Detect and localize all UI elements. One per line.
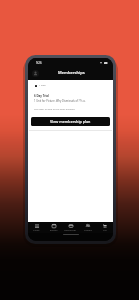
staticText: Calendar <box>84 229 92 232</box>
staticText: 1 Unit for Picture. Why Dismissals of ??… <box>34 99 86 103</box>
staticText: Classes <box>33 229 40 232</box>
staticText: Memberships <box>64 229 77 232</box>
staticText: Booking <box>50 229 58 232</box>
staticText: View membership plan <box>50 119 91 124</box>
staticText: 9:26 <box>36 61 42 65</box>
staticText: Memberships <box>58 70 85 75</box>
staticText: Cart <box>103 229 107 232</box>
button[interactable]: Calendar <box>79 222 96 233</box>
staticText: Will open on app of this after booking <box>34 108 75 111</box>
button[interactable]: Memberships <box>62 222 79 233</box>
button[interactable]: Booking <box>45 222 62 233</box>
button[interactable]: View membership plan <box>31 117 110 126</box>
staticText: 6 Day Trial <box>34 94 49 98</box>
staticText: 1 Plan <box>39 84 46 87</box>
button[interactable]: Profile <box>32 70 39 77</box>
button[interactable]: Classes <box>28 222 45 233</box>
button[interactable]: Cart <box>96 222 113 233</box>
